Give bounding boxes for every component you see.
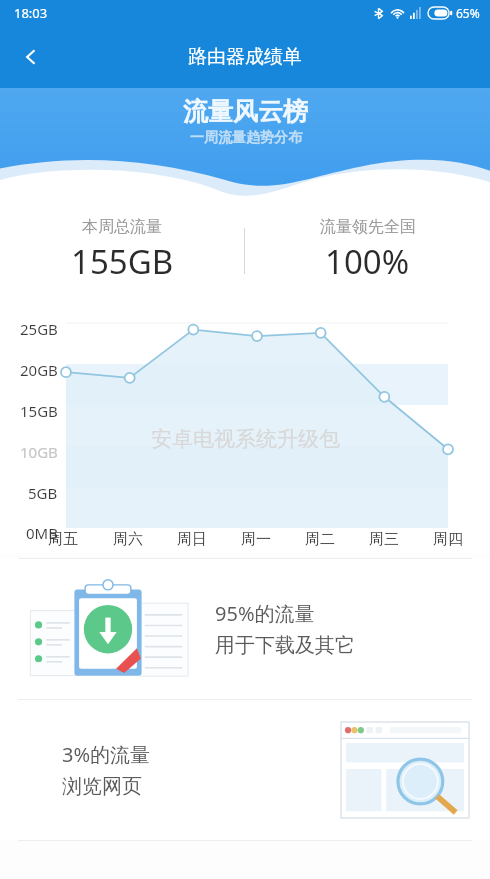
- staticText: 浏览网页: [62, 774, 142, 799]
- staticText: 一周流量趋势分布: [190, 129, 302, 147]
- staticText: 周四: [433, 530, 463, 549]
- staticText: 15GB: [20, 401, 58, 421]
- button[interactable]: 95%的流量: [0, 559, 490, 699]
- staticText: 10GB: [20, 442, 58, 462]
- staticText: 周一: [241, 530, 271, 549]
- staticText: 周日: [177, 530, 207, 549]
- button[interactable]: Back: [8, 34, 54, 80]
- staticText: 0MB: [26, 523, 58, 543]
- staticText: 155GB: [71, 239, 174, 284]
- staticText: 路由器成绩单: [188, 45, 302, 69]
- staticText: 95%的流量: [215, 600, 315, 627]
- staticText: 本周总流量: [82, 217, 162, 237]
- button[interactable]: 本周总流量: [0, 217, 244, 284]
- staticText: 18:03: [14, 4, 48, 22]
- staticText: 3%的流量: [62, 741, 151, 768]
- button[interactable]: 3%的流量: [0, 700, 490, 840]
- staticText: 25GB: [20, 319, 58, 339]
- staticText: 用于下载及其它: [215, 633, 355, 658]
- staticText: 周三: [369, 530, 399, 549]
- staticText: 100%: [325, 239, 410, 284]
- staticText: 65%: [456, 5, 480, 21]
- staticText: 流量风云榜: [183, 96, 308, 127]
- staticText: 流量领先全国: [320, 217, 416, 237]
- staticText: 5GB: [28, 483, 58, 503]
- staticText: 安卓电视系统升级包: [151, 426, 340, 452]
- button[interactable]: 流量领先全国: [245, 217, 490, 284]
- staticText: 周六: [113, 530, 143, 549]
- staticText: 周二: [305, 530, 335, 549]
- staticText: 周五: [48, 530, 78, 549]
- staticText: 20GB: [20, 360, 58, 380]
